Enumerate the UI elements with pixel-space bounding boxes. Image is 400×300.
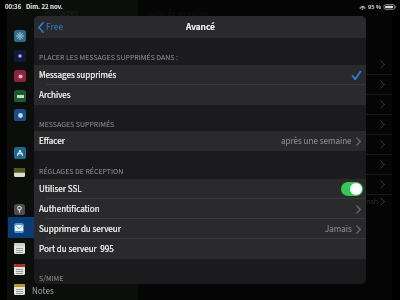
staticText: Boîte de réception — [148, 8, 209, 19]
button[interactable]: Messages supprimés — [34, 65, 366, 85]
staticText: MESSAGES SUPPRIMÉS — [39, 119, 115, 130]
staticText: après une semaine — [281, 135, 352, 148]
staticText: RÉGLAGES DE RÉCEPTION — [39, 166, 124, 177]
button[interactable]: Port du serveur 995 — [34, 239, 366, 259]
button[interactable]: Effacer — [34, 131, 366, 151]
staticText: Dim. 22 nov. — [26, 2, 63, 12]
staticText: PLACER LES MESSAGES SUPPRIMÉS DANS : — [39, 52, 179, 63]
button[interactable]: Utiliser SSL — [34, 179, 366, 199]
staticText: Utiliser SSL — [39, 183, 82, 196]
staticText: Free — [46, 20, 64, 34]
staticText: Port du serveur 995 — [39, 243, 114, 256]
staticText: Réglages — [44, 7, 79, 20]
staticText: Supprimer du serveur — [39, 223, 121, 236]
staticText: Archives — [39, 89, 71, 102]
button[interactable]: Archives — [34, 85, 366, 105]
staticText: 00:36 — [5, 2, 22, 12]
staticText: Authentification — [39, 203, 100, 216]
staticText: 95 % — [368, 2, 382, 11]
button[interactable]: Authentification — [34, 199, 366, 219]
staticText: Messages supprimés — [39, 69, 117, 82]
staticText: Notes — [32, 285, 54, 298]
staticText: Jamais — [325, 223, 352, 236]
button[interactable]: Free — [38, 20, 64, 34]
button[interactable]: Supprimer du serveur — [34, 219, 366, 239]
staticText: nsh — [366, 196, 379, 207]
staticText: Avancé — [186, 20, 215, 34]
staticText: Effacer — [39, 135, 65, 148]
staticText: S/MIME — [39, 273, 64, 284]
